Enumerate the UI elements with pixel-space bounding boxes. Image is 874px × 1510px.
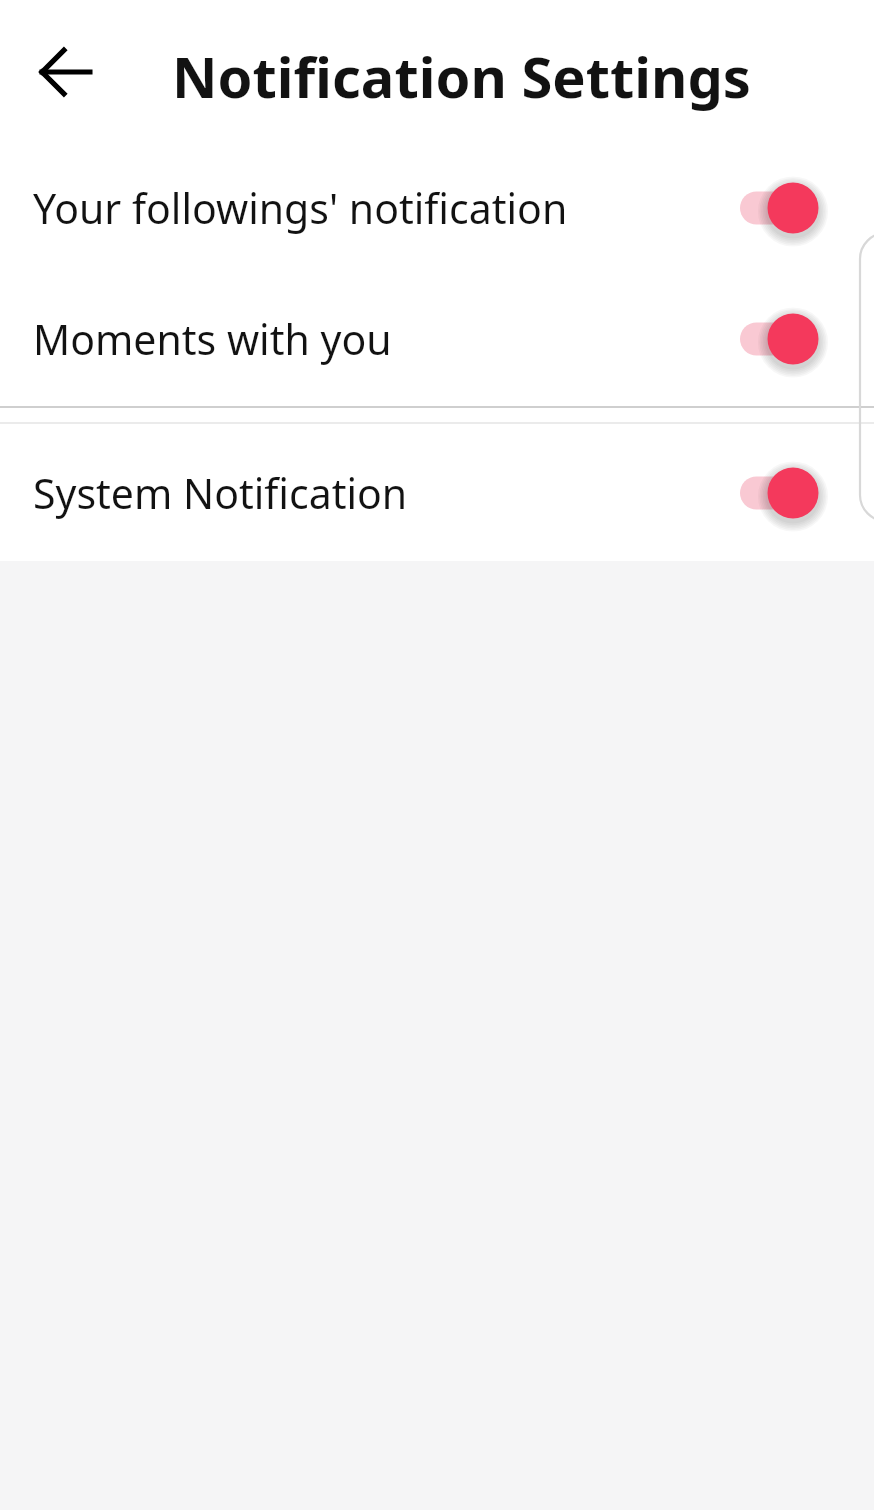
staticText: Your followings' notification — [33, 180, 736, 236]
button[interactable]: Back — [22, 28, 110, 116]
button[interactable]: System Notification — [0, 424, 874, 561]
button[interactable]: Your followings' notification — [0, 145, 874, 271]
button[interactable]: Toggle on — [736, 177, 826, 239]
button[interactable]: Moments with you — [0, 271, 874, 406]
button[interactable]: Toggle on — [736, 462, 826, 524]
staticText: System Notification — [33, 465, 736, 521]
staticText: Moments with you — [33, 311, 736, 367]
button[interactable]: Toggle on — [736, 308, 826, 370]
staticText: Notification Settings — [172, 38, 751, 114]
